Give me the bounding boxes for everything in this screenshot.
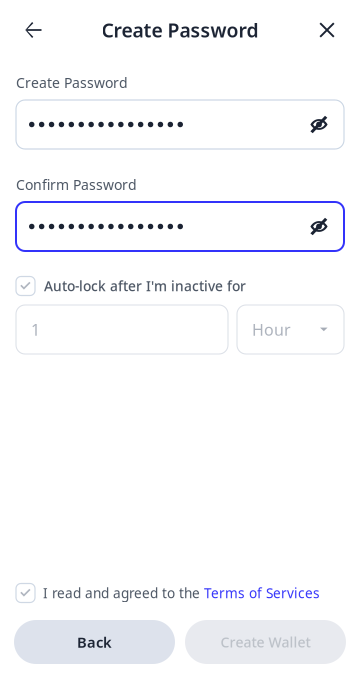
- button[interactable]: Close: [306, 9, 348, 51]
- staticText: Auto-lock after I'm inactive for: [44, 277, 246, 295]
- staticText: Confirm Password: [16, 175, 137, 194]
- staticText: Back: [77, 632, 112, 652]
- staticText: Create Password: [101, 17, 258, 43]
- button[interactable]: Show password: [303, 209, 335, 243]
- staticText: 1: [31, 319, 40, 340]
- staticText: Create Wallet: [220, 632, 310, 652]
- button[interactable]: Terms of Services: [204, 584, 320, 602]
- button[interactable]: Auto-lock toggle: [16, 276, 35, 295]
- button[interactable]: Back: [12, 9, 54, 51]
- staticText: Hour: [252, 319, 291, 340]
- button[interactable]: Back: [14, 620, 175, 664]
- button[interactable]: Hour: [237, 305, 344, 354]
- staticText: Create Password: [16, 73, 128, 92]
- staticText: Terms of Services: [204, 584, 320, 602]
- button[interactable]: Show password: [303, 107, 335, 141]
- button[interactable]: Create Wallet: [185, 620, 346, 664]
- button[interactable]: Agree to terms: [16, 583, 35, 602]
- staticText: I read and agreed to the: [43, 584, 204, 602]
